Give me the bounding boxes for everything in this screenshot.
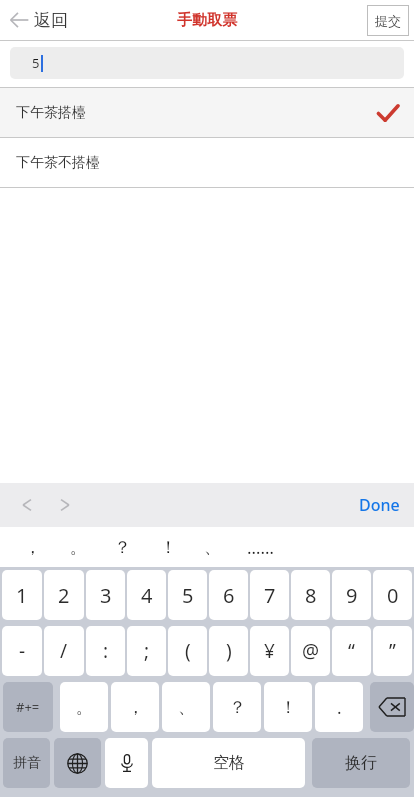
button[interactable]: ？ [100,527,144,567]
staticText: 返回 [34,10,68,31]
staticText: 下午茶搭檯 [16,104,86,122]
staticText: 5 [32,54,40,72]
button[interactable]: 4 [127,570,166,620]
staticText: ， [127,697,144,718]
staticText: ？ [229,697,246,718]
button[interactable]: 8 [291,570,330,620]
button[interactable]: / [44,626,84,676]
button[interactable]: Previous [14,492,40,518]
staticText: 换行 [345,753,377,773]
staticText: 9 [346,582,358,609]
button[interactable]: Voice input [105,738,148,788]
button[interactable]: 。 [56,527,100,567]
staticText: ？ [114,537,131,558]
button[interactable]: Done [359,494,400,516]
button[interactable]: 5 [10,47,404,79]
staticText: ¥ [264,638,275,664]
button[interactable]: 下午茶不搭檯 [0,138,414,187]
staticText: 下午茶不搭檯 [16,154,100,172]
staticText: 1 [16,582,28,609]
button[interactable]: ？ [213,682,261,732]
staticText: #+= [16,698,40,716]
button[interactable]: @ [291,626,330,676]
staticText: …… [247,536,274,559]
staticText: 空格 [213,753,245,773]
button[interactable]: 9 [332,570,371,620]
button[interactable]: ， [111,682,159,732]
button[interactable]: ， [10,527,54,567]
staticText: 、 [178,697,195,718]
button[interactable]: 5 [168,570,207,620]
button[interactable]: 换行 [312,738,410,788]
staticText: “ [348,638,355,664]
staticText: 。 [76,697,93,718]
staticText: : [103,638,109,664]
staticText: 手動取票 [177,11,237,30]
button[interactable]: : [86,626,125,676]
button[interactable]: ！ [146,527,190,567]
button[interactable]: …… [238,527,282,567]
button[interactable]: “ [332,626,371,676]
button[interactable]: 6 [209,570,248,620]
staticText: ) [226,638,232,664]
button[interactable]: ” [373,626,412,676]
button[interactable]: Delete [370,682,414,732]
button[interactable]: 拼音 [3,738,50,788]
button[interactable]: Next [52,492,78,518]
button[interactable]: 提交 [367,5,409,36]
button[interactable]: ( [168,626,207,676]
button[interactable]: 、 [190,527,234,567]
staticText: ， [24,537,41,558]
staticText: 8 [305,582,317,609]
staticText: 。 [70,537,87,558]
button[interactable]: . [315,682,363,732]
staticText: 6 [223,582,235,609]
button[interactable]: ; [127,626,166,676]
staticText: ( [185,638,191,664]
button[interactable]: 返回 [6,7,68,33]
staticText: - [19,638,26,664]
button[interactable]: 7 [250,570,289,620]
staticText: ” [389,638,396,664]
button[interactable]: 2 [44,570,84,620]
button[interactable]: 。 [60,682,108,732]
staticText: . [337,696,342,719]
button[interactable]: - [2,626,42,676]
staticText: 拼音 [13,754,41,772]
staticText: ！ [160,537,177,558]
button[interactable]: 0 [373,570,412,620]
staticText: 2 [58,582,70,609]
staticText: 4 [141,582,153,609]
staticText: 3 [100,582,112,609]
staticText: @ [302,638,320,664]
staticText: 0 [387,582,399,609]
staticText: 提交 [375,13,401,29]
staticText: 5 [182,582,194,609]
button[interactable]: 3 [86,570,125,620]
button[interactable]: ¥ [250,626,289,676]
button[interactable]: 、 [162,682,210,732]
staticText: ; [144,638,150,664]
staticText: ！ [280,697,297,718]
button[interactable]: ！ [264,682,312,732]
staticText: / [60,638,68,664]
button[interactable]: 空格 [152,738,305,788]
button[interactable]: #+= [3,682,53,732]
staticText: 7 [264,582,276,609]
button[interactable]: 下午茶搭檯 [0,88,414,137]
button[interactable]: Switch language [54,738,101,788]
staticText: Done [359,494,400,516]
staticText: 、 [204,537,221,558]
button[interactable]: ) [209,626,248,676]
button[interactable]: 1 [2,570,42,620]
